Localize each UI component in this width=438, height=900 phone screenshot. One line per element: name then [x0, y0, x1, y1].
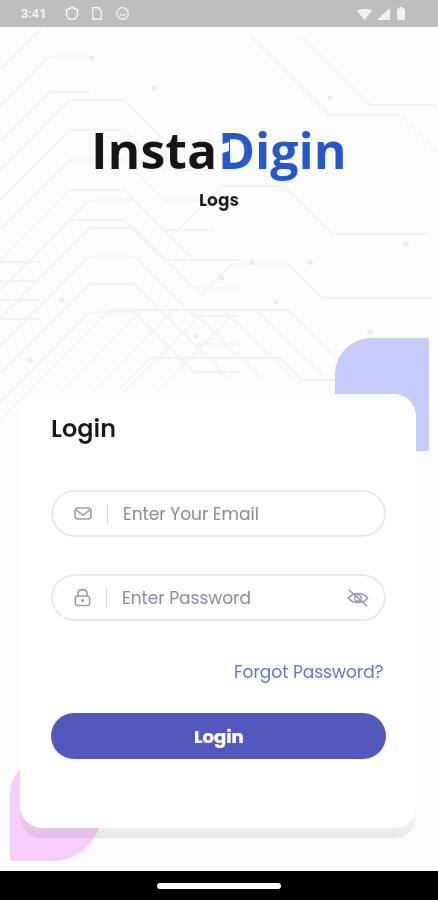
- button[interactable]: Forgot Password?: [232, 656, 386, 688]
- staticText: Enter Your Email: [123, 502, 259, 526]
- staticText: Login: [51, 412, 117, 446]
- button[interactable]: Login: [51, 713, 386, 759]
- staticText: Forgot Password?: [234, 660, 384, 684]
- staticText: Digin: [218, 116, 347, 184]
- staticText: Enter Password: [122, 586, 251, 610]
- button[interactable]: Enter Password: [51, 574, 386, 621]
- staticText: Login: [194, 724, 244, 749]
- staticText: Insta: [91, 116, 218, 184]
- staticText: Logs: [199, 188, 239, 212]
- button[interactable]: Enter Your Email: [51, 490, 386, 537]
- button[interactable]: Show password: [347, 587, 369, 609]
- staticText: 3:41: [21, 6, 47, 21]
